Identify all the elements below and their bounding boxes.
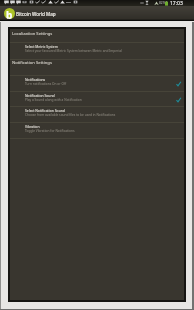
button[interactable]: Vibration bbox=[10, 123, 184, 139]
staticText: Toggle Vibration for Notifications bbox=[25, 129, 75, 133]
staticText: b bbox=[6, 8, 13, 19]
staticText: Notification Sound bbox=[25, 93, 55, 98]
staticText: 82% bbox=[159, 1, 166, 5]
staticText: Turn notifications On or Off bbox=[25, 82, 67, 86]
staticText: Play a Sound along with a Notification bbox=[25, 98, 82, 102]
staticText: Select Notification Sound bbox=[25, 108, 65, 113]
staticText: Bitcoin World Map bbox=[16, 11, 56, 17]
staticText: Notification Settings bbox=[12, 60, 52, 66]
button[interactable]: Select Notification Sound bbox=[10, 107, 184, 123]
button[interactable]: Notification Sound bbox=[10, 92, 184, 107]
staticText: Vibration bbox=[25, 124, 40, 129]
button[interactable]: Notifications bbox=[10, 76, 184, 92]
button[interactable]: Select Metric System bbox=[10, 43, 184, 60]
staticText: Select Metric System bbox=[25, 44, 58, 49]
staticText: Notifications bbox=[25, 77, 46, 82]
staticText: Localization Settings bbox=[12, 31, 53, 37]
staticText: Choose from available sound files to be … bbox=[25, 113, 116, 117]
staticText: 17:03 bbox=[170, 0, 183, 6]
staticText: Select your favoured Metric System betwe… bbox=[25, 49, 122, 53]
